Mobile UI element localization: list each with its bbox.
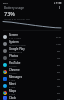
staticText: 14% [56,42,61,45]
staticText: Screen [9,33,18,37]
staticText: 2 hr 14 min [9,37,22,40]
staticText: Chrome [9,68,20,72]
staticText: Meet [9,82,16,86]
staticText: 6% [57,63,61,66]
staticText: Google Play [9,47,25,51]
staticText: 5% [57,70,61,73]
button[interactable]: Photos [0,54,64,61]
staticText: 4% [57,77,61,80]
staticText: 7 min [9,79,16,82]
staticText: 1% [57,97,61,100]
staticText: 12 min [9,58,17,61]
staticText: 31% [56,35,61,38]
button[interactable]: System [0,40,64,47]
staticText: Maps [9,89,17,93]
staticText: 2% [57,91,61,94]
staticText: 3 min [9,93,16,96]
button[interactable]: Chrome [0,68,64,75]
button[interactable]: Clock [0,96,64,100]
staticText: Background [9,51,23,54]
staticText: Messages [9,75,22,79]
button[interactable]: Messages [0,75,64,82]
staticText: 9:41 [3,1,8,4]
staticText: 3% [57,84,61,87]
button[interactable]: More options [57,5,62,10]
button[interactable]: Google Play [0,47,64,54]
staticText: 73% [4,10,15,17]
staticText: 9% [57,49,61,52]
staticText: System [9,40,19,44]
staticText: 18 min [9,72,17,75]
staticText: Photos [9,54,19,58]
button[interactable]: Maps [0,89,64,96]
staticText: Android System [9,44,26,47]
staticText: 5 min [9,86,16,89]
button[interactable]: YouTube [0,61,64,68]
button[interactable]: Screen [0,33,64,40]
staticText: 24 min [9,65,17,68]
staticText: About 9 hr 20 min left [4,17,30,20]
button[interactable]: Meet [0,82,64,89]
staticText: Clock [9,96,17,100]
staticText: Battery usage [4,6,24,10]
staticText: YouTube [9,61,21,65]
staticText: 7% [57,56,61,59]
